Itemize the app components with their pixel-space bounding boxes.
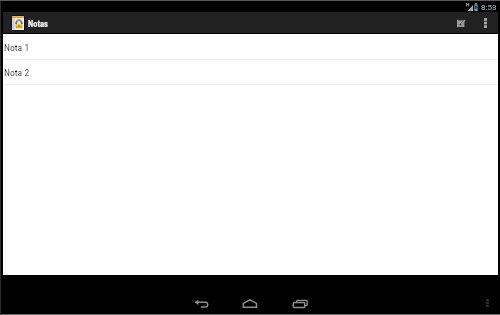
staticText: Notas bbox=[28, 19, 48, 29]
button[interactable]: More options bbox=[481, 296, 494, 310]
button[interactable]: Back bbox=[188, 296, 214, 310]
staticText: Nota 2 bbox=[4, 67, 30, 78]
button[interactable]: More options bbox=[479, 12, 491, 34]
button[interactable]: New note bbox=[453, 12, 469, 34]
button[interactable]: Nota 2 bbox=[3, 60, 498, 85]
staticText: Nota 1 bbox=[4, 42, 30, 53]
staticText: 8:53 bbox=[481, 3, 497, 12]
button[interactable]: Recent apps bbox=[287, 296, 313, 310]
button[interactable]: Nota 1 bbox=[3, 35, 498, 60]
button[interactable]: Home bbox=[237, 296, 263, 310]
